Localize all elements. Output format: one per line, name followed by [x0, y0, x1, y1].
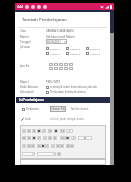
button[interactable]: Editor tool [31, 144, 35, 148]
button[interactable]: Editor tool [60, 129, 65, 133]
button[interactable]: X MIPA 1 [46, 47, 66, 50]
button[interactable]: Editor tool [27, 144, 31, 148]
button[interactable]: X MIPA 4 [46, 52, 66, 55]
button[interactable]: Dokumen [22, 107, 39, 111]
button[interactable]: Editor tool [22, 136, 26, 140]
staticText: 06/06/2021 [47, 40, 61, 44]
button[interactable]: Editor tool [27, 129, 31, 133]
button[interactable]: Editor tool [32, 136, 36, 140]
staticText: Dokumen [26, 107, 39, 111]
button[interactable]: Styles [22, 152, 35, 156]
button[interactable]: Editor tool [42, 129, 46, 133]
button[interactable]: Editor tool [41, 144, 45, 148]
staticText: isi Link, pisah dengan koma [50, 117, 84, 121]
button[interactable]: Choose File [50, 106, 66, 112]
staticText: Choose File [51, 107, 65, 111]
other: Link [21, 118, 24, 121]
button[interactable]: Jam ke [49, 67, 53, 70]
button[interactable]: Jam ke [59, 67, 63, 70]
button[interactable]: Editor tool [71, 136, 76, 140]
staticText: Kelihkan Judul Materi [46, 35, 75, 39]
button[interactable]: X MIPA 2 [66, 47, 86, 50]
staticText: X MIPA 4 [50, 52, 61, 55]
other: Signal [105, 5, 109, 9]
staticText: Kode Aktivasi [20, 85, 39, 89]
button[interactable]: Editor tool [56, 144, 60, 148]
button[interactable]: Editor tool [60, 144, 64, 148]
staticText: Jurusan [20, 45, 31, 49]
button[interactable]: Editor tool [27, 136, 31, 140]
other: Wifi [100, 5, 104, 9]
button[interactable]: Editor tool [48, 129, 52, 133]
staticText: Tanggal [20, 40, 31, 44]
button[interactable]: Editor tool [54, 129, 58, 133]
button[interactable]: Format [37, 152, 56, 156]
staticText: 4:44 [17, 5, 23, 9]
button[interactable]: Editor tool [45, 144, 49, 148]
button[interactable]: Isi Pembelajaran [16, 97, 110, 103]
staticText: PKN / MTK [46, 80, 61, 84]
button[interactable]: Editor tool [53, 136, 57, 140]
button[interactable]: Jam ke [59, 63, 63, 66]
button[interactable]: 06/06/2021 [46, 39, 67, 44]
button[interactable]: Jam ke [54, 63, 58, 66]
button[interactable]: Jam ke [64, 67, 68, 70]
button[interactable]: Jam ke [69, 67, 73, 70]
button[interactable]: Editor tool [60, 136, 65, 140]
staticText: Link [25, 117, 31, 121]
button[interactable]: Editor tool [65, 136, 70, 140]
button[interactable]: Editor tool [48, 136, 52, 140]
button[interactable]: Editor tool [32, 129, 36, 133]
button[interactable]: Editor tool [37, 129, 41, 133]
button[interactable]: Editor tool [37, 144, 41, 148]
button[interactable]: Jam ke [49, 63, 53, 66]
staticText: Isi Pembelajaran [19, 98, 45, 102]
button[interactable]: Link [21, 117, 31, 121]
button[interactable]: Editor tool [57, 152, 61, 156]
button[interactable]: X MIPA 3 [86, 47, 106, 50]
staticText: X MIPA 2 [70, 47, 81, 50]
button[interactable]: centang & isikan kode aktivasi jika ada [46, 85, 97, 89]
button[interactable]: Jam ke [54, 67, 58, 70]
button[interactable]: Editor tool [78, 136, 92, 140]
staticText: No file chosen [71, 107, 89, 111]
staticText: Materi [20, 35, 29, 39]
button[interactable]: X MIPA 6 [86, 52, 106, 55]
button[interactable]: Pembuatan kelompok diskusi [46, 90, 86, 94]
staticText: TAMBAH DATA BARU [46, 29, 74, 33]
button[interactable]: Editor tool [66, 129, 73, 133]
staticText: Ulan [20, 29, 27, 33]
staticText: X MIPA 1 [50, 47, 61, 50]
staticText: Pembuatan kelompok diskusi [50, 90, 86, 94]
staticText: Mapel [20, 80, 29, 84]
staticText: Format [38, 153, 47, 156]
staticText: X MIPA 3 [90, 47, 101, 50]
staticText: centang & isikan kode aktivasi jika ada [50, 85, 97, 89]
button[interactable]: X MIPA 5 [66, 52, 86, 55]
button[interactable]: Editor tool [70, 144, 74, 148]
button[interactable]: Editor tool [66, 144, 70, 148]
staticText: Tambah Pembelajaran [22, 17, 67, 23]
staticText: Styles [23, 153, 30, 156]
button[interactable]: Editor tool [37, 136, 41, 140]
staticText: X MIPA 6 [90, 52, 101, 55]
button[interactable]: Jam ke [69, 63, 73, 66]
button[interactable]: Jam ke [64, 63, 68, 66]
staticText: X MIPA 5 [70, 52, 81, 55]
staticText: Jam Ke [20, 64, 30, 68]
staticText: Kelompok [20, 90, 34, 94]
